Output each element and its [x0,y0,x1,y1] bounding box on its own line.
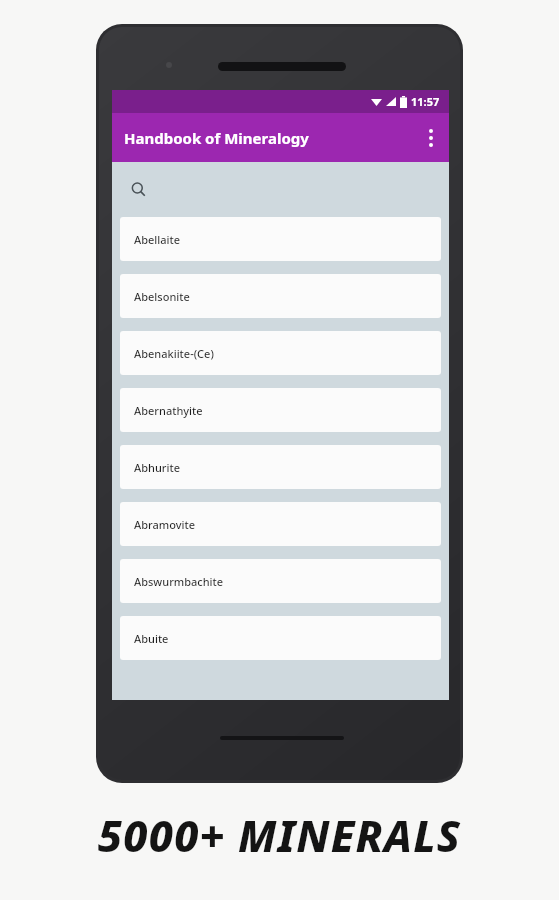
button[interactable]: Search [112,162,449,217]
staticText: Abswurmbachite [134,574,224,589]
staticText: Abenakiite-(Ce) [134,346,214,361]
staticText: Abelsonite [134,289,190,304]
button[interactable]: Abellaite [120,217,441,261]
staticText: 5000+ MINERALS [0,806,559,865]
button[interactable]: Abuite [120,616,441,660]
button[interactable]: Abramovite [120,502,441,546]
staticText: 11:57 [411,94,440,109]
button[interactable]: Abernathyite [120,388,441,432]
staticText: Abhurite [134,460,180,475]
button[interactable]: Abswurmbachite [120,559,441,603]
staticText: Handbook of Mineralogy [124,128,309,148]
button[interactable]: More options [413,113,449,162]
staticText: Abuite [134,631,169,646]
staticText: Abellaite [134,232,181,247]
button[interactable]: Abelsonite [120,274,441,318]
button[interactable]: Abhurite [120,445,441,489]
button[interactable]: Abenakiite-(Ce) [120,331,441,375]
staticText: Abernathyite [134,403,203,418]
staticText: Abramovite [134,517,195,532]
